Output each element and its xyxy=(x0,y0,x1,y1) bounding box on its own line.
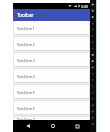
button[interactable]: Back xyxy=(23,121,33,131)
staticText: Text Item 2 xyxy=(17,42,35,46)
staticText: Text Item 6 xyxy=(17,106,35,110)
staticText: Text Item 1 xyxy=(17,26,35,30)
button[interactable]: Home xyxy=(48,121,58,131)
staticText: Text Item 5 xyxy=(17,90,35,94)
button[interactable]: Text Item 7 xyxy=(14,117,89,120)
button[interactable]: Toolbar xyxy=(13,9,90,21)
button[interactable]: Text Item 3 xyxy=(14,53,89,66)
staticText: Toolbar xyxy=(17,12,34,18)
staticText: Text Item 7 xyxy=(17,117,35,120)
button[interactable]: Text Item 2 xyxy=(14,37,89,50)
staticText: Text Item 3 xyxy=(17,58,35,62)
staticText: 5:00 xyxy=(81,4,89,9)
button[interactable]: Text Item 5 xyxy=(14,85,89,98)
button[interactable]: Recents xyxy=(72,121,82,131)
button[interactable]: Text Item 6 xyxy=(14,101,89,114)
button[interactable]: Text Item 1 xyxy=(14,21,89,34)
staticText: Text Item 4 xyxy=(17,74,35,78)
button[interactable]: Text Item 4 xyxy=(14,69,89,82)
